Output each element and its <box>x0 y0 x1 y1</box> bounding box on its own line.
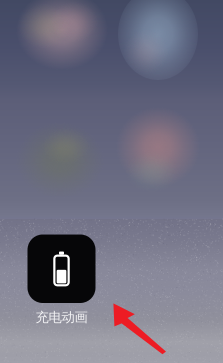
staticText: 充电动画 <box>35 309 87 326</box>
button[interactable]: 充电动画 <box>17 234 105 323</box>
